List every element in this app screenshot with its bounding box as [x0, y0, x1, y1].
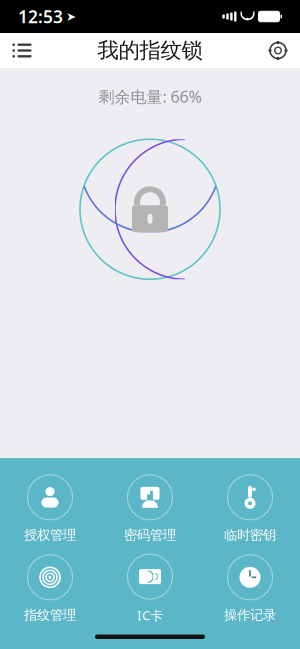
button[interactable]: 指纹管理	[0, 556, 100, 622]
button[interactable]: 授权管理	[0, 476, 100, 542]
button[interactable]: 密码管理	[100, 476, 200, 542]
button[interactable]: 操作记录	[200, 556, 300, 622]
staticText: 12:53	[18, 5, 63, 28]
staticText: 指纹管理	[24, 607, 76, 623]
button[interactable]: 临时密钥	[200, 476, 300, 542]
staticText: IC卡	[137, 606, 163, 624]
button[interactable]: 菜单	[0, 33, 44, 68]
staticText: 授权管理	[24, 527, 76, 543]
staticText: 我的指纹锁	[97, 37, 202, 64]
button[interactable]: 设置	[256, 33, 300, 68]
staticText: 剩余电量: 66%	[98, 86, 201, 107]
staticText: 密码管理	[124, 527, 176, 543]
staticText: 临时密钥	[224, 527, 276, 543]
staticText: 操作记录	[224, 607, 276, 623]
button[interactable]: 锁定状态	[80, 139, 220, 279]
button[interactable]: IC卡	[100, 556, 200, 622]
staticText: ➤	[66, 10, 76, 23]
